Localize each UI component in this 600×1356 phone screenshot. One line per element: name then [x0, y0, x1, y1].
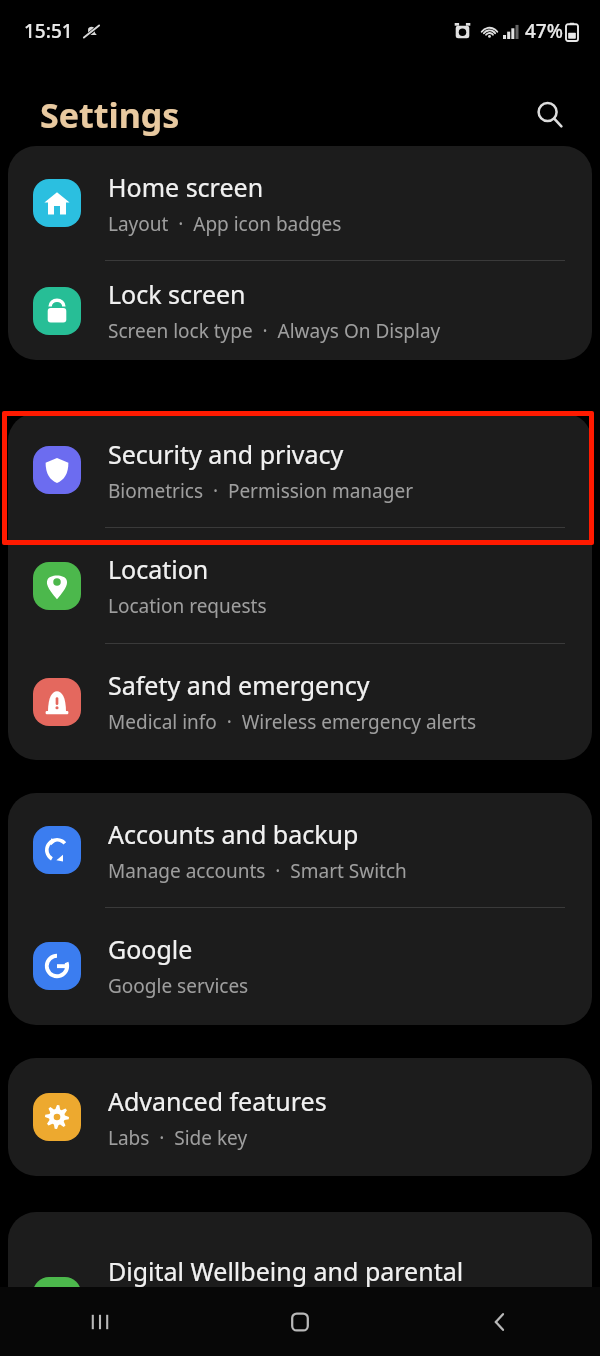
staticText: Google services [108, 973, 249, 999]
staticText: Screen lock type · Always On Display [108, 318, 441, 344]
staticText: Safety and emergency [108, 668, 370, 702]
button[interactable]: Digital Wellbeing and parental [8, 1212, 592, 1330]
button[interactable]: Safety and emergency [8, 644, 592, 759]
staticText: Home screen [108, 170, 264, 204]
staticText: Location [108, 552, 209, 586]
staticText: Digital Wellbeing and parental [108, 1254, 464, 1288]
button[interactable]: Google [8, 908, 592, 1023]
staticText: Labs · Side key [108, 1125, 248, 1151]
staticText: Security and privacy [108, 437, 344, 471]
staticText: Layout · App icon badges [108, 211, 342, 237]
staticText: Settings [40, 92, 180, 138]
button[interactable]: Recent apps [0, 1287, 200, 1356]
staticText: Manage accounts · Smart Switch [108, 858, 407, 884]
staticText: Accounts and backup [108, 817, 359, 851]
staticText: Medical info · Wireless emergency alerts [108, 709, 477, 735]
button[interactable]: Home [200, 1287, 400, 1356]
button[interactable]: Advanced features [8, 1058, 592, 1176]
staticText: Location requests [108, 593, 267, 619]
staticText: 47% [525, 18, 563, 44]
button[interactable]: Home screen [8, 146, 592, 260]
button[interactable]: Lock screen [8, 261, 592, 360]
button[interactable]: Accounts and backup [8, 793, 592, 907]
button[interactable]: Security and privacy [8, 413, 592, 527]
button[interactable]: Back [400, 1287, 600, 1356]
staticText: 15:51 [24, 18, 73, 44]
button[interactable]: Location [8, 528, 592, 643]
staticText: Biometrics · Permission manager [108, 478, 413, 504]
button[interactable]: Search [526, 91, 574, 139]
staticText: Google [108, 932, 193, 966]
staticText: Advanced features [108, 1084, 327, 1118]
staticText: Lock screen [108, 277, 246, 311]
